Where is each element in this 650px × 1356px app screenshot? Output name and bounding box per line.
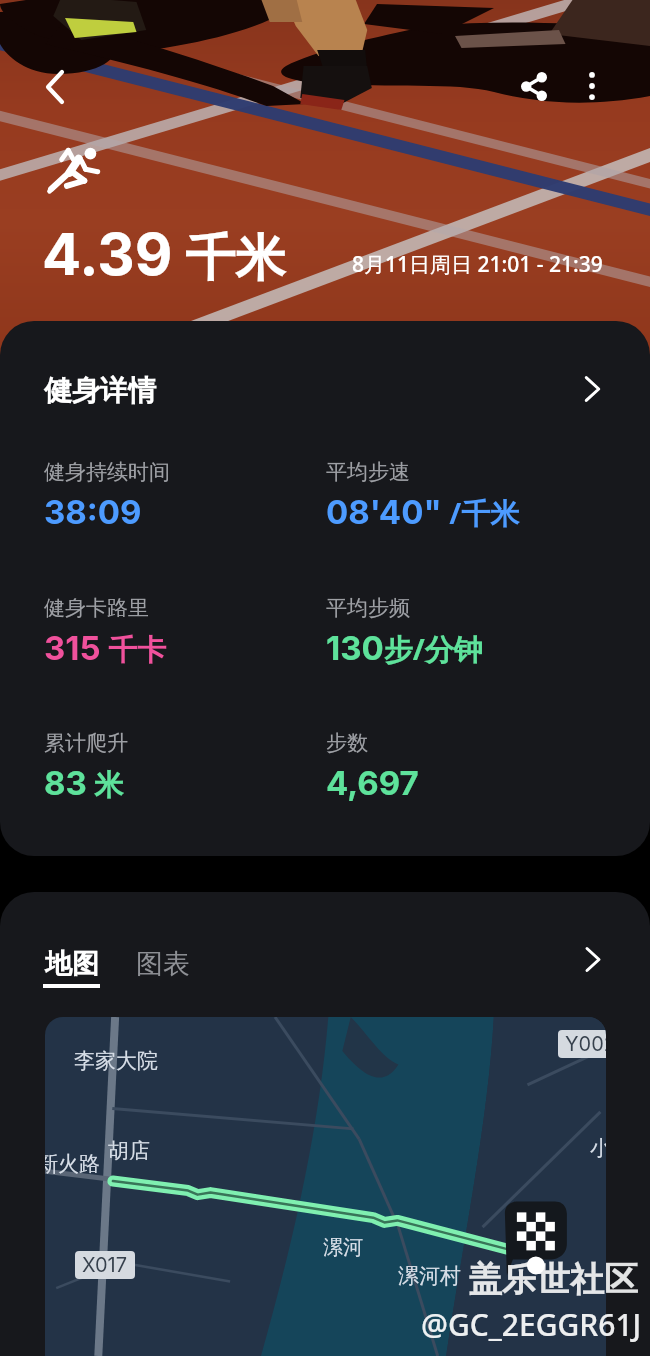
button[interactable]: Open map — [574, 941, 610, 977]
staticText: 地图 — [45, 947, 99, 981]
button[interactable]: 图表 — [136, 947, 190, 981]
staticText: 图表 — [136, 947, 190, 981]
staticText: X017 — [82, 1253, 128, 1277]
staticText: 38:09 — [44, 492, 142, 532]
staticText: 平均步速 — [326, 459, 410, 485]
button[interactable]: 健身详情 — [0, 321, 650, 459]
staticText: 08'40" /千米 — [326, 492, 520, 533]
staticText: 4.39 千米 — [42, 219, 286, 290]
staticText: 漯河 — [323, 1235, 363, 1260]
staticText: 315 千卡 — [44, 628, 167, 669]
staticText: 健身持续时间 — [44, 459, 170, 485]
staticText: 新火路 — [45, 1151, 100, 1177]
button[interactable]: Back — [24, 56, 86, 118]
staticText: @GC_2EGGR61J — [421, 1304, 642, 1345]
staticText: 盖乐世社区 — [468, 1258, 638, 1301]
staticText: 4,697 — [326, 763, 419, 803]
staticText: 平均步频 — [326, 595, 410, 621]
staticText: 李家大院 — [74, 1048, 158, 1074]
staticText: 83 米 — [44, 763, 124, 804]
staticText: 胡店 — [108, 1138, 150, 1164]
button[interactable]: 地图 — [43, 947, 100, 988]
staticText: 步数 — [326, 730, 368, 756]
staticText: 8月11日周日 21:01 - 21:39 — [352, 250, 603, 279]
staticText: 小 — [590, 1135, 606, 1161]
button[interactable]: Share — [503, 55, 565, 117]
staticText: 健身卡路里 — [44, 595, 149, 621]
staticText: 130步/分钟 — [326, 628, 483, 669]
staticText: 漯河村 — [398, 1263, 461, 1289]
button[interactable]: More options — [561, 55, 623, 117]
staticText: 累计爬升 — [44, 730, 128, 756]
staticText: 健身详情 — [44, 373, 156, 408]
staticText: Y002 — [565, 1032, 606, 1056]
